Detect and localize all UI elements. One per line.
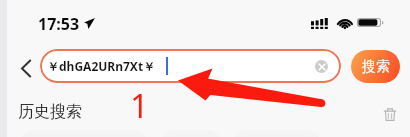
button[interactable]: ￥dhGA2URn7Xt￥	[40, 49, 341, 83]
button[interactable]: Clear text	[315, 60, 328, 73]
button[interactable]: Back	[12, 54, 40, 82]
button[interactable]: Clear search history	[378, 102, 402, 126]
staticText: 历史搜索	[18, 102, 82, 122]
staticText: 搜索	[362, 58, 390, 76]
button[interactable]: 搜索	[351, 50, 400, 83]
staticText: ￥dhGA2URn7Xt￥	[47, 58, 156, 74]
staticText: 1	[130, 83, 149, 128]
staticText: 17:53	[38, 13, 80, 35]
